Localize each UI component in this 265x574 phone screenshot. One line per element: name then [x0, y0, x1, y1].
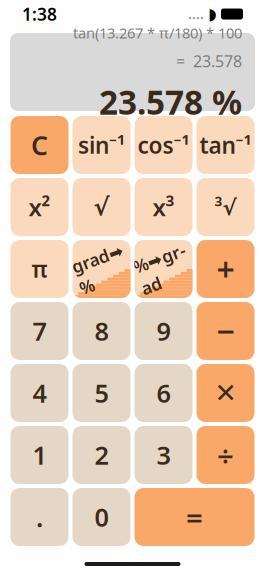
staticText: = 23.578: [176, 50, 242, 72]
button[interactable]: 4: [10, 364, 68, 422]
button[interactable]: C: [10, 116, 68, 174]
button[interactable]: +: [196, 240, 254, 298]
button[interactable]: ³√: [196, 178, 254, 236]
button[interactable]: 8: [72, 302, 130, 360]
staticText: √: [93, 193, 109, 221]
staticText: =: [186, 497, 203, 536]
staticText: +: [216, 248, 234, 290]
staticText: 23.578 %: [99, 80, 242, 124]
staticText: sin⁻¹: [78, 130, 125, 160]
staticText: ....: [188, 5, 204, 23]
button[interactable]: cos⁻¹: [134, 116, 192, 174]
button[interactable]: 5: [72, 364, 130, 422]
button[interactable]: .: [10, 488, 68, 546]
button[interactable]: grad➡%: [72, 240, 130, 298]
staticText: −: [216, 310, 234, 352]
staticText: 4: [32, 376, 46, 410]
button[interactable]: 9: [134, 302, 192, 360]
button[interactable]: 3: [134, 426, 192, 484]
button[interactable]: π: [10, 240, 68, 298]
staticText: 3: [156, 438, 170, 472]
staticText: x³: [152, 191, 174, 223]
staticText: 9: [156, 314, 170, 348]
button[interactable]: ÷: [196, 426, 254, 484]
button[interactable]: 6: [134, 364, 192, 422]
button[interactable]: 0: [72, 488, 130, 546]
button[interactable]: sin⁻¹: [72, 116, 130, 174]
staticText: %➡grad: [136, 246, 191, 292]
staticText: C: [31, 127, 48, 163]
staticText: 5: [94, 376, 108, 410]
button[interactable]: √: [72, 178, 130, 236]
staticText: grad➡%: [74, 246, 128, 292]
button[interactable]: %➡grad: [134, 240, 192, 298]
staticText: x²: [28, 191, 50, 223]
staticText: ÷: [217, 435, 234, 474]
button[interactable]: =: [134, 488, 254, 546]
staticText: .: [36, 499, 43, 535]
button[interactable]: −: [196, 302, 254, 360]
staticText: 8: [94, 314, 108, 348]
staticText: ✕: [214, 378, 236, 408]
button[interactable]: 2: [72, 426, 130, 484]
staticText: 2: [94, 438, 108, 472]
staticText: tan(13.267 * π/180) * 100: [73, 23, 242, 42]
button[interactable]: 7: [10, 302, 68, 360]
staticText: tan⁻¹: [199, 130, 251, 160]
staticText: ◗: [208, 5, 216, 23]
staticText: π: [31, 254, 47, 284]
button[interactable]: x³: [134, 178, 192, 236]
button[interactable]: tan⁻¹: [196, 116, 254, 174]
staticText: ³√: [214, 193, 236, 221]
button[interactable]: ✕: [196, 364, 254, 422]
staticText: cos⁻¹: [137, 130, 189, 160]
button[interactable]: x²: [10, 178, 68, 236]
staticText: 6: [156, 376, 170, 410]
staticText: 1: [32, 438, 46, 472]
staticText: 1:38: [22, 2, 57, 25]
button[interactable]: 1: [10, 426, 68, 484]
staticText: 0: [94, 500, 108, 534]
staticText: 7: [32, 314, 46, 348]
